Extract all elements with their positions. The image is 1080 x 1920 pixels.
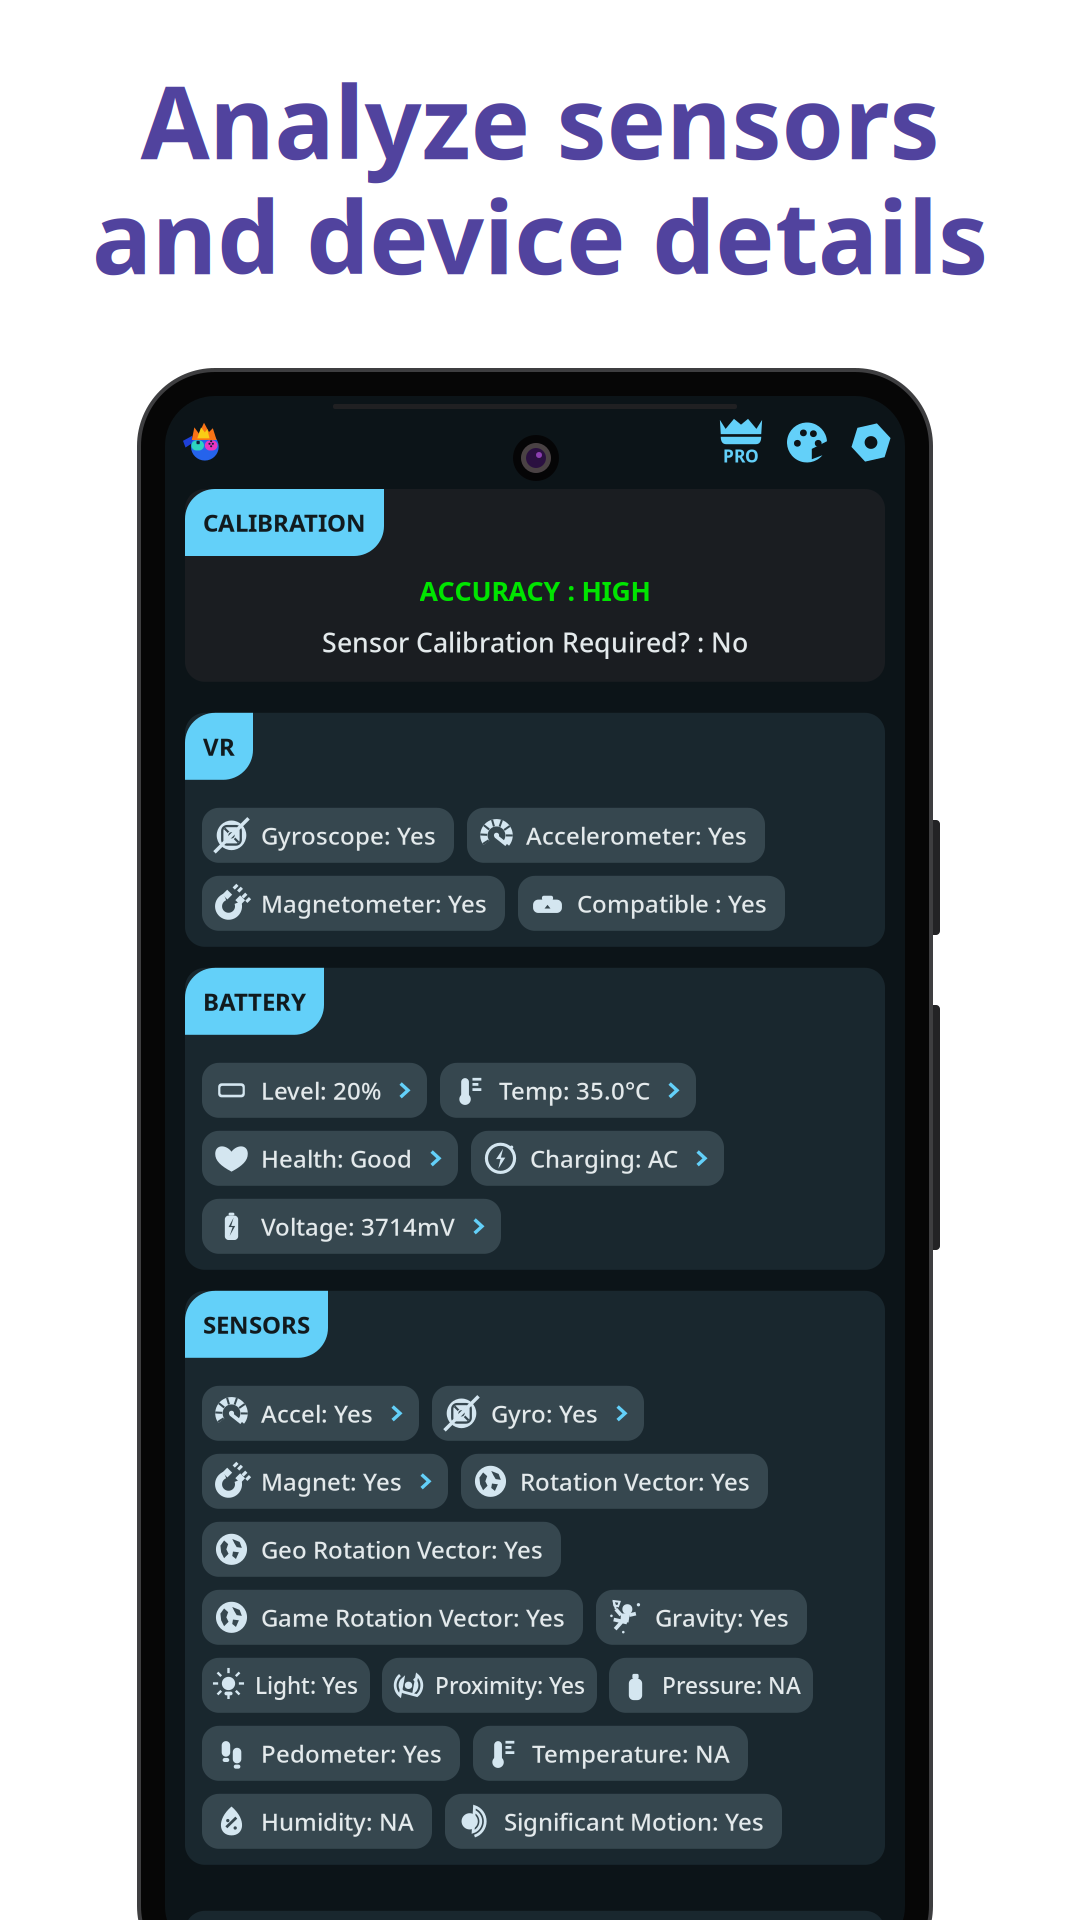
staticText: Gravity: Yes <box>655 1601 789 1633</box>
staticText: Level: 20% <box>261 1074 381 1106</box>
button[interactable]: Level: 20% <box>202 1063 427 1118</box>
staticText: Charging: AC <box>530 1142 678 1174</box>
staticText: Magnet: Yes <box>261 1465 402 1497</box>
button[interactable]: Significant Motion: Yes <box>445 1794 782 1849</box>
staticText: Accelerometer: Yes <box>526 819 747 851</box>
staticText: PRO <box>723 444 759 467</box>
button[interactable]: Magnetometer: Yes <box>202 876 505 931</box>
staticText: SENSORS <box>203 1308 310 1340</box>
staticText: Gyro: Yes <box>491 1397 598 1429</box>
button[interactable]: Gyro: Yes <box>432 1386 644 1441</box>
staticText: Analyze sensors <box>140 54 939 187</box>
button[interactable]: Home <box>183 421 225 463</box>
staticText: Sensor Calibration Required? : No <box>322 624 748 660</box>
staticText: Temp: 35.0°C <box>499 1074 650 1106</box>
staticText: Game Rotation Vector: Yes <box>261 1601 565 1633</box>
button[interactable]: Settings <box>851 422 891 462</box>
button[interactable]: Proximity: Yes <box>382 1658 597 1713</box>
button[interactable]: Temperature: NA <box>473 1726 748 1781</box>
staticText: and device details <box>92 169 988 302</box>
staticText: Magnetometer: Yes <box>261 887 487 919</box>
button[interactable]: Humidity: NA <box>202 1794 432 1849</box>
button[interactable]: Magnet: Yes <box>202 1454 448 1509</box>
button[interactable]: Pedometer: Yes <box>202 1726 460 1781</box>
staticText: Significant Motion: Yes <box>504 1805 764 1837</box>
staticText: Compatible : Yes <box>577 887 767 919</box>
staticText: Geo Rotation Vector: Yes <box>261 1533 543 1565</box>
button[interactable]: Gyroscope: Yes <box>202 808 454 863</box>
button[interactable]: Pressure: NA <box>609 1658 813 1713</box>
button[interactable]: Rotation Vector: Yes <box>461 1454 768 1509</box>
button[interactable]: Accelerometer: Yes <box>467 808 765 863</box>
button[interactable]: Health: Good <box>202 1131 458 1186</box>
staticText: VR <box>203 730 235 762</box>
button[interactable]: Game Rotation Vector: Yes <box>202 1590 583 1645</box>
staticText: Pedometer: Yes <box>261 1737 442 1769</box>
staticText: Temperature: NA <box>532 1737 730 1769</box>
staticText: Pressure: NA <box>662 1670 801 1700</box>
staticText: Rotation Vector: Yes <box>520 1465 750 1497</box>
staticText: CALIBRATION <box>203 507 366 538</box>
staticText: BATTERY <box>203 985 306 1017</box>
button[interactable]: Upgrade to Pro <box>719 418 763 467</box>
staticText: Light: Yes <box>255 1670 358 1700</box>
button[interactable]: Accel: Yes <box>202 1386 419 1441</box>
staticText: Accel: Yes <box>261 1397 373 1429</box>
button[interactable]: Temp: 35.0°C <box>440 1063 696 1118</box>
button[interactable]: Light: Yes <box>202 1658 370 1713</box>
staticText: Gyroscope: Yes <box>261 819 436 851</box>
staticText: Proximity: Yes <box>435 1670 585 1700</box>
staticText: Health: Good <box>261 1142 412 1174</box>
staticText: Voltage: 3714mV <box>261 1210 455 1242</box>
button[interactable]: Compatible : Yes <box>518 876 785 931</box>
button[interactable]: Themes <box>787 422 827 462</box>
button[interactable]: Charging: AC <box>471 1131 724 1186</box>
staticText: Humidity: NA <box>261 1805 414 1837</box>
button[interactable]: Geo Rotation Vector: Yes <box>202 1522 561 1577</box>
staticText: ACCURACY : HIGH <box>419 573 650 608</box>
button[interactable]: Voltage: 3714mV <box>202 1199 501 1254</box>
button[interactable]: Gravity: Yes <box>596 1590 807 1645</box>
